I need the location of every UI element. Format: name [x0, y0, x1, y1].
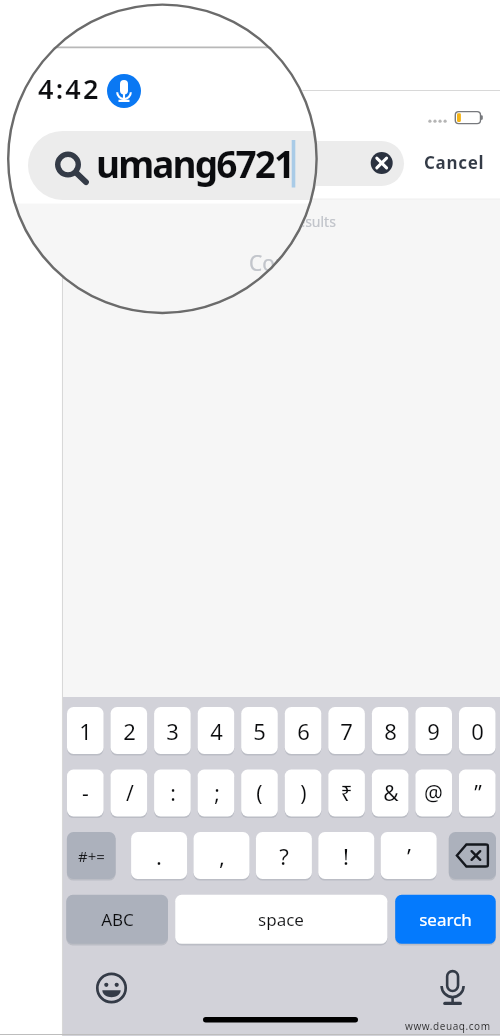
button[interactable]: : [154, 770, 191, 817]
staticText: 4:42 [38, 70, 101, 107]
button[interactable]: space [175, 895, 387, 944]
staticText: , [219, 841, 225, 871]
staticText: 0 [471, 716, 484, 746]
staticText: ) [300, 779, 307, 808]
staticText: space [258, 908, 304, 931]
button[interactable]: ABC [66, 895, 168, 944]
button[interactable]: search [395, 895, 496, 944]
button[interactable]: ? [256, 832, 312, 879]
staticText: 8 [384, 716, 397, 746]
staticText: ! [343, 841, 349, 871]
button[interactable]: 6 [285, 707, 322, 754]
staticText: www.deuaq.com [405, 1019, 491, 1033]
button[interactable]: ’ [381, 832, 437, 879]
staticText: Cancel [424, 151, 485, 174]
button[interactable]: 1 [67, 707, 104, 754]
staticText: ” [474, 779, 482, 808]
button[interactable]: . [131, 832, 187, 879]
button[interactable]: 8 [372, 707, 409, 754]
staticText: / [126, 779, 134, 808]
staticText: 7 [340, 716, 353, 746]
button[interactable]: @ [415, 770, 452, 817]
button[interactable]: 3 [154, 707, 191, 754]
button[interactable]: ) [285, 770, 322, 817]
staticText: ? [279, 841, 289, 871]
button[interactable]: , [194, 832, 250, 879]
staticText: search [419, 908, 472, 931]
staticText: @ [424, 779, 443, 808]
button[interactable]: Backspace [449, 832, 496, 879]
staticText: #+= [78, 846, 105, 866]
staticText: ABC [101, 908, 134, 931]
button[interactable]: 9 [415, 707, 452, 754]
staticText: 5 [253, 716, 266, 746]
button[interactable]: 2 [111, 707, 148, 754]
staticText: ; [214, 779, 220, 808]
staticText: Contacts [249, 249, 318, 278]
staticText: 9 [427, 716, 440, 746]
button[interactable]: & [372, 770, 409, 817]
staticText: & [383, 779, 399, 808]
button[interactable]: Emoji keyboard [88, 965, 135, 1012]
button[interactable]: ₹ [328, 770, 365, 817]
button[interactable]: Voice input [429, 965, 476, 1012]
staticText: 3 [166, 716, 179, 746]
button[interactable]: / [111, 770, 148, 817]
staticText: No results [269, 212, 336, 231]
staticText: umang6721 [96, 138, 294, 188]
staticText: ( [256, 779, 263, 808]
staticText: 1 [79, 716, 92, 746]
button[interactable]: ” [459, 770, 496, 817]
staticText: 6 [297, 716, 310, 746]
staticText: - [82, 779, 89, 808]
staticText: . [156, 841, 162, 871]
staticText: 2 [123, 716, 136, 746]
button[interactable]: ( [241, 770, 278, 817]
button[interactable]: 7 [328, 707, 365, 754]
button[interactable]: 5 [241, 707, 278, 754]
staticText: : [170, 779, 176, 808]
button[interactable]: 0 [459, 707, 496, 754]
button[interactable]: ; [198, 770, 235, 817]
button[interactable]: Cancel [424, 151, 488, 175]
staticText: ’ [407, 841, 411, 871]
staticText: 4 [210, 716, 223, 746]
button[interactable]: 4 [198, 707, 235, 754]
button[interactable]: #+= [67, 832, 116, 879]
button[interactable]: ! [318, 832, 374, 879]
staticText: ₹ [340, 779, 353, 808]
button[interactable]: - [67, 770, 104, 817]
button[interactable]: Voice search [107, 74, 141, 108]
